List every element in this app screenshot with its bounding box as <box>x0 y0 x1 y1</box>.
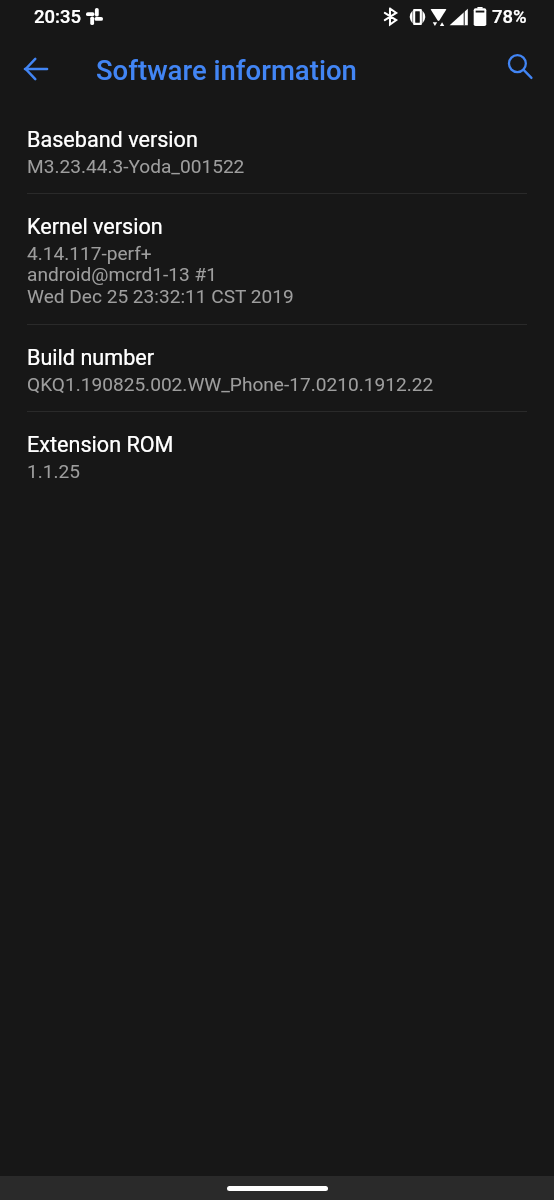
staticText: Kernel version <box>27 214 163 239</box>
staticText: 4.14.117-perf+ android@mcrd1-13 #1 Wed D… <box>27 242 294 308</box>
staticText: 78% <box>492 6 527 28</box>
staticText: Build number <box>27 345 155 370</box>
staticText: QKQ1.190825.002.WW_Phone-17.0210.1912.22 <box>27 373 434 395</box>
button[interactable]: Back <box>0 33 74 107</box>
staticText: M3.23.44.3-Yoda_001522 <box>27 155 245 177</box>
button[interactable]: Baseband version <box>0 107 554 194</box>
staticText: Software information <box>96 54 357 86</box>
button[interactable]: Search <box>490 33 554 107</box>
button[interactable]: Extension ROM <box>0 412 554 498</box>
button[interactable]: Build number <box>0 325 554 412</box>
staticText: Baseband version <box>27 127 198 152</box>
staticText: 20:35 <box>34 6 81 28</box>
staticText: 1.1.25 <box>27 460 80 482</box>
button[interactable]: Kernel version <box>0 194 554 325</box>
staticText: Extension ROM <box>27 432 174 457</box>
